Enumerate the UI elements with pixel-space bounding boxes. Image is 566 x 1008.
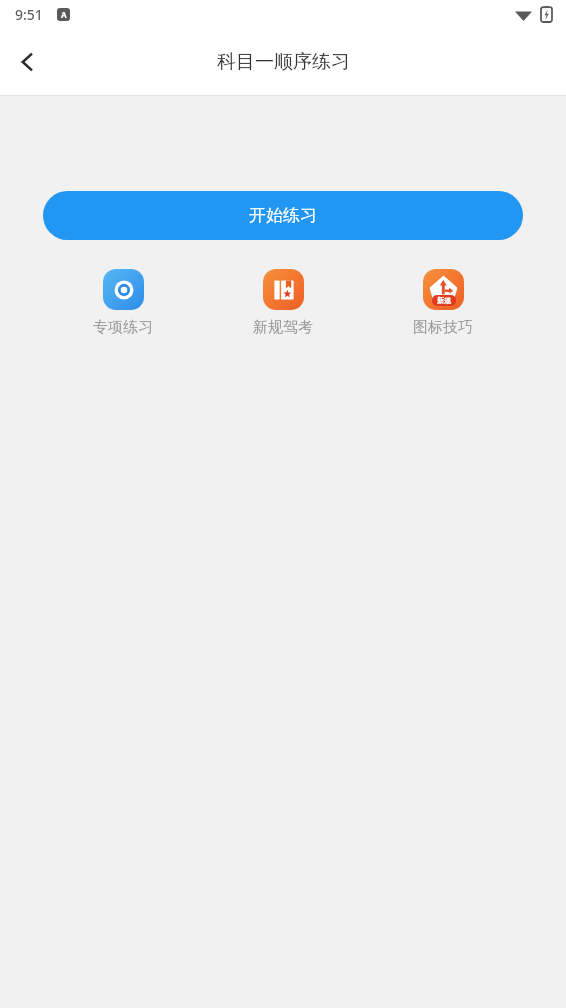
button[interactable]: 新规 (363, 267, 523, 339)
button[interactable]: 新规驾考 (203, 267, 363, 339)
staticText: 开始练习 (249, 205, 317, 226)
button[interactable]: 开始练习 (43, 191, 523, 240)
button[interactable]: Back (0, 34, 56, 90)
staticText: 图标技巧 (413, 318, 473, 337)
staticText: A (61, 9, 67, 20)
button[interactable]: 专项练习 (43, 267, 203, 339)
staticText: 9:51 (15, 5, 43, 24)
staticText: 新规驾考 (253, 318, 313, 337)
staticText: 科目一顺序练习 (217, 50, 350, 74)
staticText: 新规 (437, 296, 451, 305)
staticText: 专项练习 (93, 318, 153, 337)
